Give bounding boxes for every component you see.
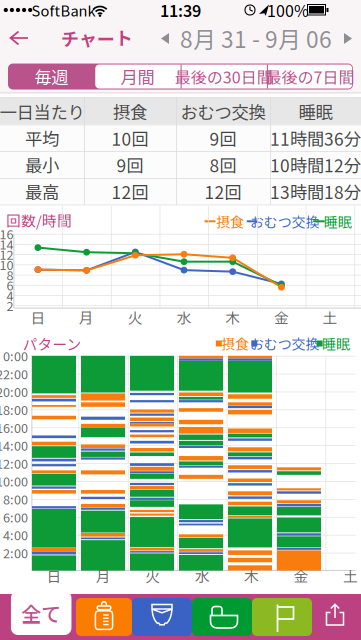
- staticText: 金: [274, 306, 289, 328]
- button[interactable]: Next week: [343, 32, 355, 45]
- staticText: 日: [46, 565, 61, 586]
- staticText: 最後の30日間: [175, 65, 273, 88]
- staticText: 12回: [111, 179, 148, 204]
- staticText: 土: [343, 565, 358, 586]
- staticText: 平均: [25, 126, 59, 151]
- button[interactable]: Previous week: [160, 32, 172, 45]
- staticText: 10時間12分: [270, 152, 361, 177]
- staticText: 12: [0, 245, 13, 263]
- staticText: 土: [323, 306, 338, 328]
- staticText: 10: [0, 255, 13, 274]
- staticText: 木: [244, 565, 259, 586]
- staticText: おむつ交換: [250, 211, 320, 232]
- staticText: 水: [195, 565, 210, 586]
- staticText: 火: [145, 565, 160, 586]
- staticText: 16:00: [0, 418, 28, 436]
- staticText: 9回: [209, 126, 236, 151]
- staticText: 睡眠: [298, 99, 332, 124]
- staticText: 6:00: [3, 508, 28, 526]
- staticText: 4: [6, 286, 13, 304]
- staticText: 水: [176, 306, 191, 328]
- staticText: 8:00: [3, 490, 28, 508]
- button[interactable]: 毎週: [8, 63, 94, 89]
- staticText: 11時間36分: [270, 126, 361, 151]
- staticText: 4:00: [3, 526, 28, 544]
- staticText: 14:00: [0, 436, 28, 454]
- staticText: 16: [0, 225, 13, 243]
- staticText: 金: [293, 565, 308, 586]
- staticText: チャート: [61, 25, 133, 51]
- staticText: 18:00: [0, 400, 28, 419]
- staticText: おむつ交換: [180, 99, 265, 124]
- button[interactable]: 最後の30日間: [181, 63, 267, 89]
- button[interactable]: Share: [313, 596, 357, 636]
- staticText: 日: [30, 306, 45, 328]
- staticText: 8月 31 - 9月 06: [180, 22, 332, 54]
- staticText: 摂食: [216, 211, 244, 232]
- staticText: 0:00: [3, 347, 28, 365]
- button[interactable]: Potty: [192, 598, 252, 636]
- staticText: 最後の7日間: [265, 65, 354, 88]
- staticText: 月: [79, 306, 94, 328]
- staticText: 最高: [25, 179, 59, 204]
- staticText: 月間: [120, 64, 154, 89]
- staticText: 13時間18分: [270, 179, 361, 204]
- staticText: 摂食: [113, 99, 147, 124]
- staticText: 8: [6, 265, 13, 284]
- staticText: 最小: [25, 152, 59, 177]
- staticText: 睡眠: [324, 211, 352, 232]
- staticText: SoftBank: [31, 0, 95, 21]
- staticText: 回数/時間: [6, 209, 72, 231]
- button[interactable]: Back: [9, 30, 29, 46]
- staticText: 8回: [209, 152, 236, 177]
- staticText: 9回: [116, 152, 143, 177]
- button[interactable]: 最後の7日間: [267, 63, 353, 89]
- button[interactable]: Feeding: [76, 598, 132, 636]
- staticText: 摂食: [221, 333, 249, 354]
- staticText: 100%: [267, 0, 309, 22]
- staticText: 火: [128, 306, 143, 328]
- staticText: 20:00: [0, 382, 28, 401]
- staticText: 木: [225, 306, 240, 328]
- staticText: 22:00: [0, 364, 28, 383]
- staticText: 全て: [21, 598, 61, 627]
- staticText: 12回: [204, 179, 241, 204]
- staticText: 10回: [111, 126, 148, 151]
- button[interactable]: 月間: [94, 63, 180, 89]
- staticText: 2:00: [3, 543, 28, 562]
- staticText: 月: [96, 565, 111, 586]
- staticText: 毎週: [34, 64, 68, 89]
- staticText: 14: [0, 235, 13, 253]
- staticText: 11:39: [160, 0, 201, 22]
- staticText: 一日当たり: [0, 99, 84, 124]
- staticText: 2: [6, 296, 13, 314]
- staticText: 12:00: [0, 454, 28, 472]
- staticText: 6: [6, 276, 13, 294]
- button[interactable]: 全て: [11, 591, 71, 635]
- staticText: おむつ交換: [250, 333, 320, 354]
- staticText: 睡眠: [322, 333, 350, 354]
- staticText: 10:00: [0, 472, 28, 490]
- button[interactable]: Diaper: [132, 598, 192, 636]
- staticText: パターン: [22, 333, 81, 354]
- button[interactable]: Milestone: [252, 598, 312, 636]
